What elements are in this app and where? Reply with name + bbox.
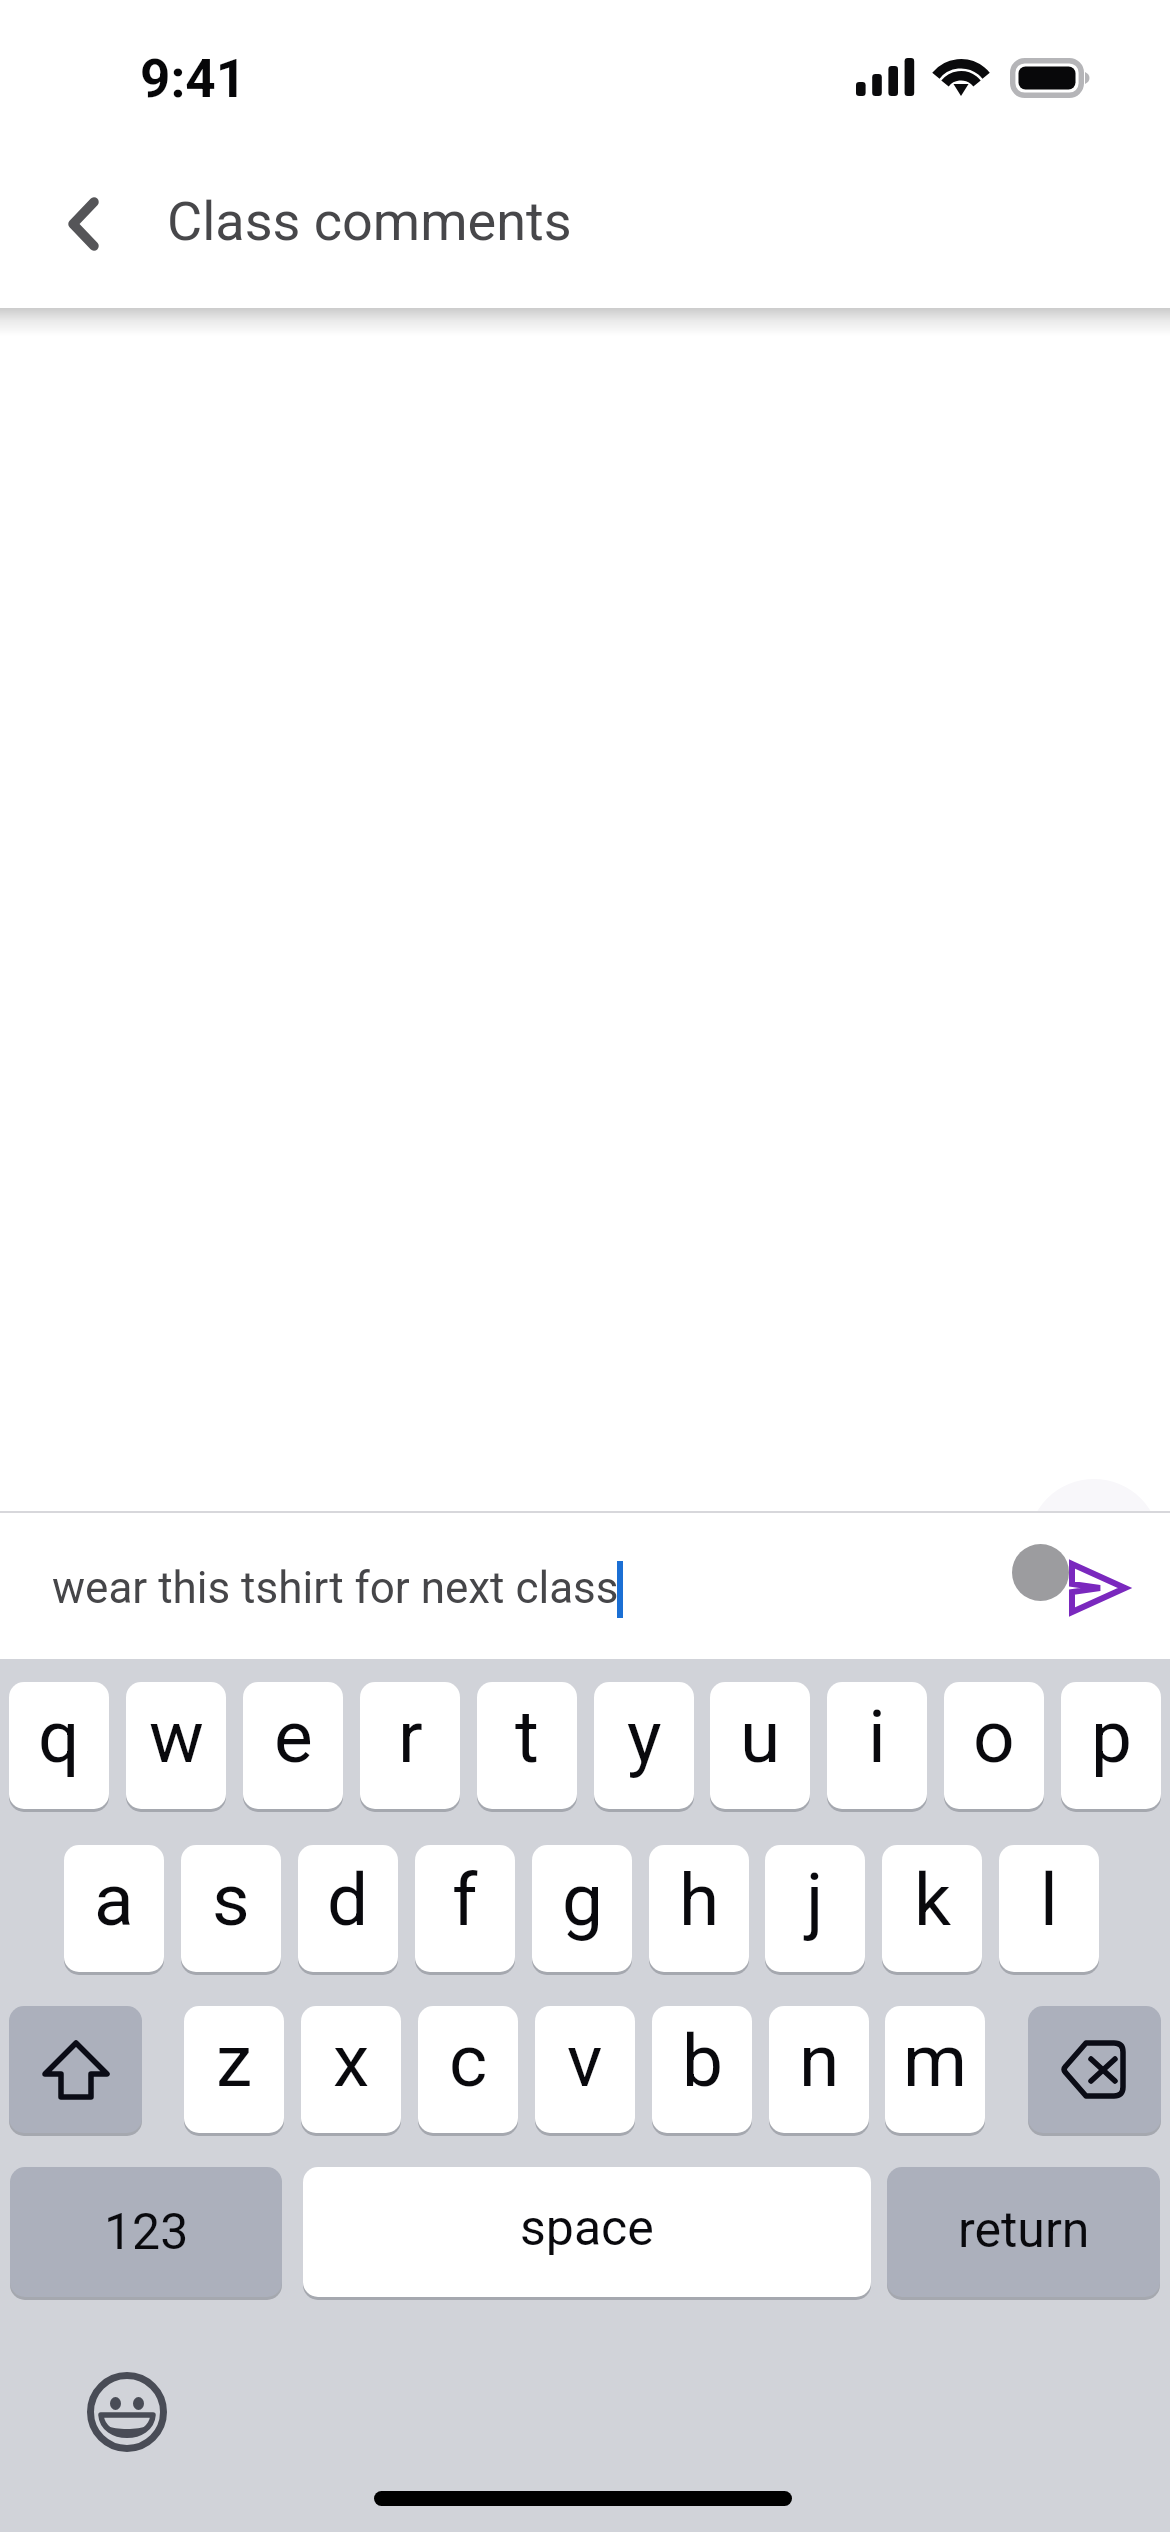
staticText: k: [914, 1857, 951, 1943]
button[interactable]: j: [765, 1845, 865, 1972]
button[interactable]: g: [532, 1845, 632, 1972]
staticText: o: [973, 1694, 1015, 1780]
button[interactable]: space: [303, 2167, 871, 2297]
button[interactable]: s: [181, 1845, 281, 1972]
button[interactable]: d: [298, 1845, 398, 1972]
staticText: s: [212, 1857, 250, 1943]
button[interactable]: t: [477, 1682, 577, 1809]
button[interactable]: i: [827, 1682, 927, 1809]
button[interactable]: f: [415, 1845, 515, 1972]
button[interactable]: u: [710, 1682, 810, 1809]
staticText: a: [94, 1857, 134, 1943]
staticText: q: [38, 1694, 80, 1780]
button[interactable]: l: [999, 1845, 1099, 1972]
staticText: b: [682, 2018, 723, 2104]
button[interactable]: return: [887, 2167, 1160, 2297]
button[interactable]: Emoji keyboard: [83, 2368, 171, 2456]
button[interactable]: a: [64, 1845, 164, 1972]
staticText: l: [1040, 1857, 1058, 1943]
staticText: h: [679, 1857, 720, 1943]
button[interactable]: y: [594, 1682, 694, 1809]
staticText: x: [333, 2018, 370, 2104]
button[interactable]: k: [882, 1845, 982, 1972]
button[interactable]: Shift: [9, 2006, 142, 2133]
staticText: n: [799, 2018, 840, 2104]
button[interactable]: Backspace: [1028, 2006, 1161, 2133]
button[interactable]: Send: [1060, 1539, 1140, 1619]
staticText: c: [449, 2018, 488, 2104]
button[interactable]: w: [126, 1682, 226, 1809]
staticText: m: [903, 2018, 968, 2104]
button[interactable]: 123: [10, 2167, 282, 2297]
button[interactable]: m: [885, 2006, 985, 2133]
staticText: j: [806, 1857, 824, 1943]
button[interactable]: o: [944, 1682, 1044, 1809]
staticText: g: [562, 1857, 603, 1943]
staticText: p: [1091, 1694, 1132, 1780]
staticText: t: [515, 1694, 539, 1780]
button[interactable]: wear this tshirt for next class: [0, 1513, 1170, 1659]
staticText: space: [520, 2199, 654, 2258]
staticText: d: [327, 1857, 369, 1943]
button[interactable]: v: [535, 2006, 635, 2133]
button[interactable]: e: [243, 1682, 343, 1809]
staticText: 123: [104, 2203, 189, 2262]
staticText: z: [216, 2018, 253, 2104]
button[interactable]: x: [301, 2006, 401, 2133]
button[interactable]: p: [1061, 1682, 1161, 1809]
staticText: Class comments: [167, 190, 572, 253]
staticText: return: [958, 2201, 1090, 2260]
staticText: v: [567, 2018, 603, 2104]
staticText: 9:41: [140, 48, 247, 110]
staticText: w: [149, 1694, 204, 1780]
button[interactable]: b: [652, 2006, 752, 2133]
button[interactable]: n: [769, 2006, 869, 2133]
staticText: i: [868, 1694, 886, 1780]
staticText: r: [398, 1694, 423, 1780]
staticText: u: [740, 1694, 781, 1780]
staticText: f: [452, 1857, 478, 1943]
button[interactable]: r: [360, 1682, 460, 1809]
staticText: wear this tshirt for next class: [52, 1562, 619, 1614]
button[interactable]: Back: [38, 174, 130, 294]
button[interactable]: c: [418, 2006, 518, 2133]
button[interactable]: h: [649, 1845, 749, 1972]
button[interactable]: z: [184, 2006, 284, 2133]
staticText: e: [274, 1694, 313, 1780]
staticText: y: [627, 1694, 662, 1780]
button[interactable]: q: [9, 1682, 109, 1809]
